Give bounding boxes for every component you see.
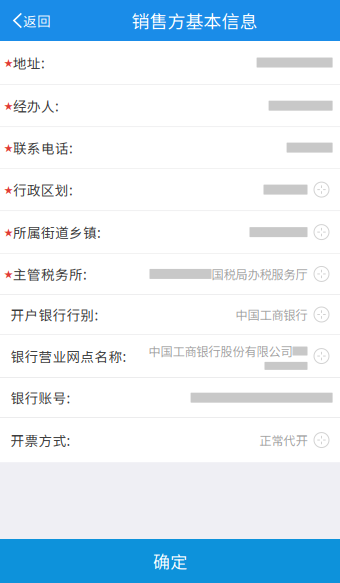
staticText: 行政区划: bbox=[13, 180, 73, 199]
staticText: 销售方基本信息 bbox=[132, 7, 258, 34]
button[interactable]: ★ bbox=[0, 211, 340, 253]
button[interactable]: 返回 bbox=[0, 0, 61, 41]
staticText: 主管税务所: bbox=[13, 264, 87, 284]
staticText: 银行营业网点名称: bbox=[10, 346, 126, 366]
button[interactable]: 银行账号: bbox=[0, 378, 340, 417]
staticText: ★ bbox=[4, 141, 13, 154]
staticText: 国税局办税服务厅 bbox=[211, 265, 307, 283]
staticText: 中国工商银行 bbox=[235, 306, 307, 323]
button[interactable]: 确定 bbox=[0, 539, 340, 583]
staticText: 返回 bbox=[23, 11, 51, 30]
staticText: 正常代开 bbox=[259, 431, 307, 449]
staticText: 开票方式: bbox=[10, 430, 70, 450]
button[interactable]: ★ bbox=[0, 169, 340, 210]
button[interactable]: ★ bbox=[0, 41, 340, 84]
staticText: ★ bbox=[4, 56, 13, 69]
button[interactable]: ★ bbox=[0, 254, 340, 294]
button[interactable]: 开户银行行别: bbox=[0, 295, 340, 334]
button[interactable]: 银行营业网点名称: bbox=[0, 335, 340, 377]
button[interactable]: ★ bbox=[0, 85, 340, 126]
staticText: 银行账号: bbox=[10, 388, 70, 407]
staticText: 所属街道乡镇: bbox=[13, 222, 101, 242]
staticText: 联系电话: bbox=[13, 138, 73, 157]
staticText: ★ bbox=[4, 99, 13, 112]
button[interactable]: 开票方式: bbox=[0, 418, 340, 462]
staticText: 开户银行行别: bbox=[10, 305, 98, 324]
staticText: 中国工商银行股份有限公司 bbox=[148, 342, 292, 360]
staticText: ★ bbox=[4, 226, 13, 239]
staticText: ★ bbox=[4, 267, 13, 280]
staticText: ★ bbox=[4, 183, 13, 196]
button[interactable]: ★ bbox=[0, 127, 340, 168]
staticText: 经办人: bbox=[13, 96, 59, 115]
staticText: 确定 bbox=[153, 549, 187, 573]
staticText: 地址: bbox=[13, 53, 45, 72]
